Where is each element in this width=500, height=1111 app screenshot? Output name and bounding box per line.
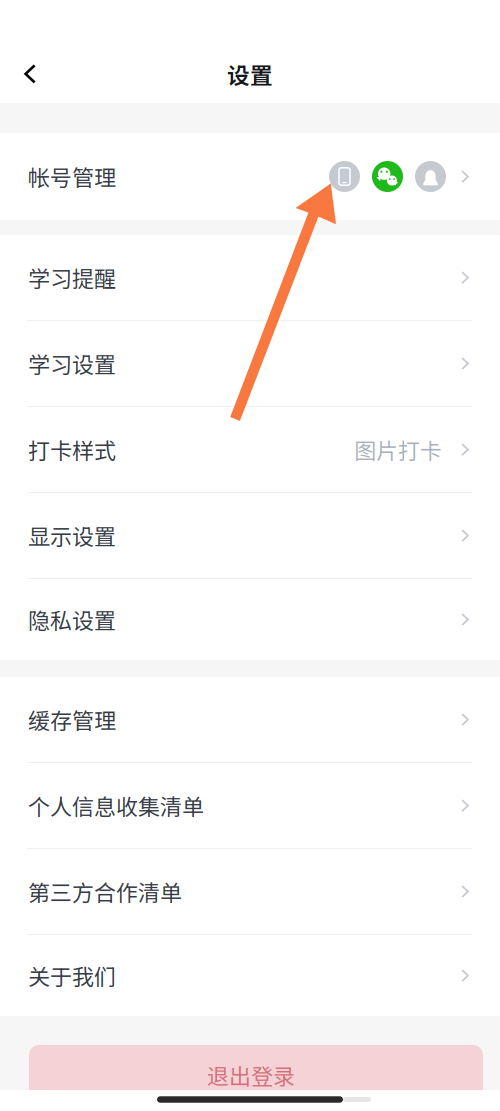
- staticText: 关于我们: [28, 960, 116, 991]
- button[interactable]: 打卡样式: [0, 407, 500, 492]
- button[interactable]: 帐号管理: [0, 133, 500, 220]
- button[interactable]: 缓存管理: [0, 677, 500, 762]
- staticText: 缓存管理: [28, 704, 116, 735]
- button[interactable]: Back: [0, 48, 58, 100]
- button[interactable]: 关于我们: [0, 935, 500, 1016]
- button[interactable]: 隐私设置: [0, 579, 500, 660]
- staticText: 帐号管理: [28, 161, 116, 192]
- button[interactable]: 第三方合作清单: [0, 849, 500, 934]
- staticText: 学习设置: [28, 348, 116, 379]
- staticText: 设置: [227, 58, 273, 90]
- button[interactable]: 学习设置: [0, 321, 500, 406]
- button[interactable]: 个人信息收集清单: [0, 763, 500, 848]
- staticText: 退出登录: [207, 1059, 295, 1091]
- staticText: 隐私设置: [28, 604, 116, 635]
- staticText: 打卡样式: [28, 434, 116, 465]
- button[interactable]: 学习提醒: [0, 235, 500, 320]
- button[interactable]: 退出登录: [29, 1045, 483, 1105]
- staticText: 学习提醒: [28, 262, 116, 293]
- staticText: 图片打卡: [354, 434, 442, 465]
- staticText: 个人信息收集清单: [28, 790, 204, 821]
- staticText: 显示设置: [28, 520, 116, 551]
- staticText: 第三方合作清单: [28, 876, 182, 907]
- button[interactable]: 显示设置: [0, 493, 500, 578]
